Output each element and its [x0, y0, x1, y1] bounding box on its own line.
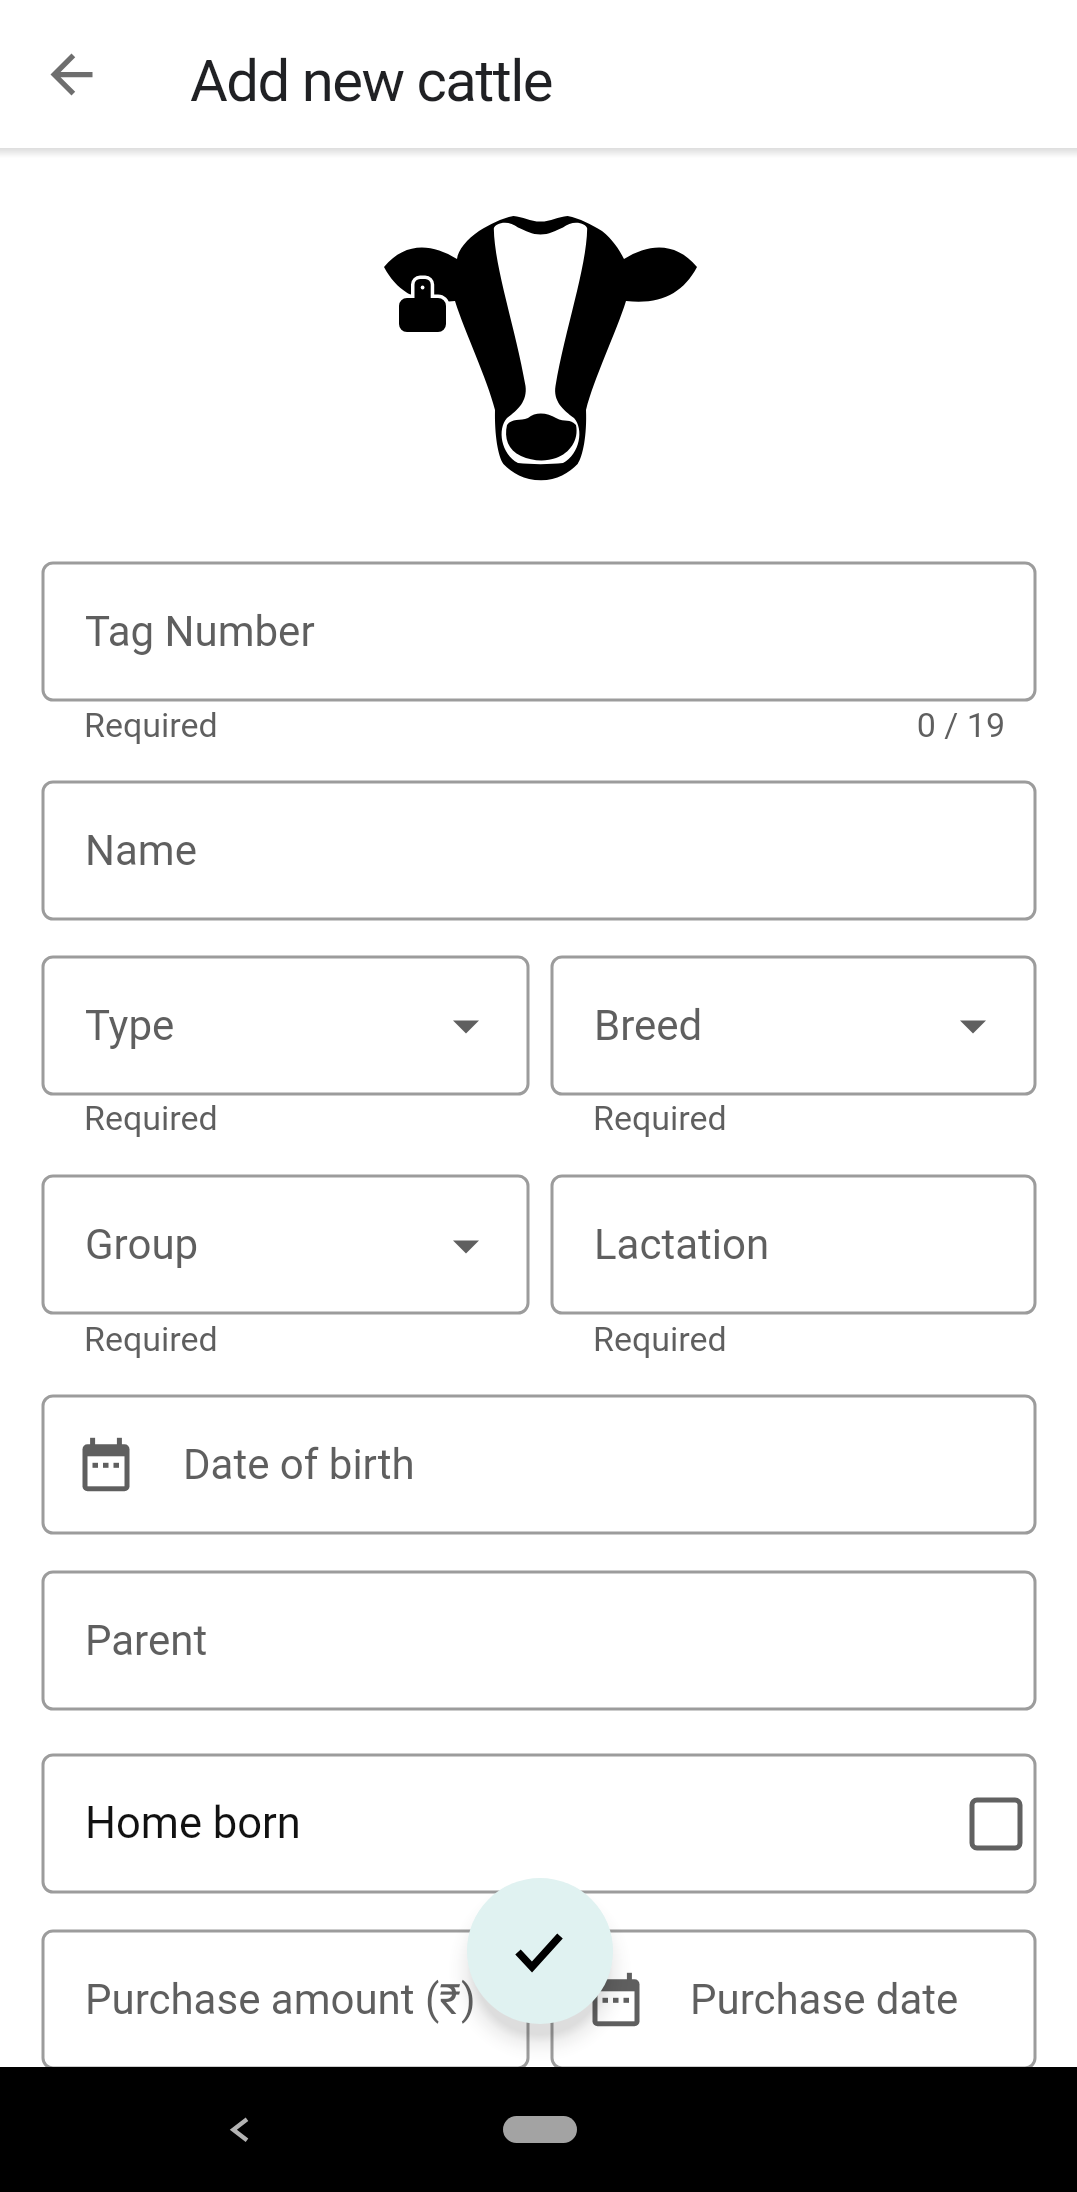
staticText: Type	[85, 1001, 175, 1050]
button[interactable]: Navigate back	[208, 2098, 270, 2160]
button[interactable]: Tag Number	[43, 563, 1035, 700]
staticText: Name	[85, 826, 197, 875]
staticText: Purchase amount (₹)	[85, 1975, 476, 2024]
button[interactable]: Save	[467, 1878, 613, 2024]
staticText: Required	[84, 1319, 218, 1359]
button[interactable]: Back	[40, 43, 103, 106]
staticText: 0 / 19	[860, 705, 1005, 745]
button[interactable]: Name	[43, 782, 1035, 919]
staticText: Date of birth	[183, 1440, 415, 1489]
staticText: Purchase date	[690, 1975, 959, 2024]
staticText: Required	[593, 1098, 727, 1138]
staticText: Group	[85, 1220, 199, 1269]
button[interactable]: Group	[43, 1176, 528, 1313]
staticText: Breed	[594, 1001, 703, 1050]
staticText: Required	[593, 1319, 727, 1359]
button[interactable]: Breed	[552, 957, 1035, 1094]
button[interactable]: Date of birth	[43, 1396, 1035, 1533]
staticText: Parent	[85, 1616, 208, 1665]
button[interactable]: Type	[43, 957, 528, 1094]
button[interactable]: Lactation	[552, 1176, 1035, 1313]
staticText: Home born	[85, 1798, 301, 1849]
button[interactable]: Parent	[43, 1572, 1035, 1709]
button[interactable]: Home born	[43, 1755, 1035, 1892]
staticText: Tag Number	[85, 607, 315, 656]
button[interactable]: Home born checkbox	[972, 1800, 1020, 1848]
button[interactable]: Purchase amount (₹)	[43, 1931, 528, 2068]
staticText: Add new cattle	[190, 47, 553, 115]
staticText: Required	[84, 1098, 218, 1138]
staticText: Required	[84, 705, 218, 745]
staticText: Lactation	[594, 1220, 770, 1269]
button[interactable]: Purchase date	[552, 1931, 1035, 2068]
button[interactable]: Home	[503, 2116, 577, 2143]
